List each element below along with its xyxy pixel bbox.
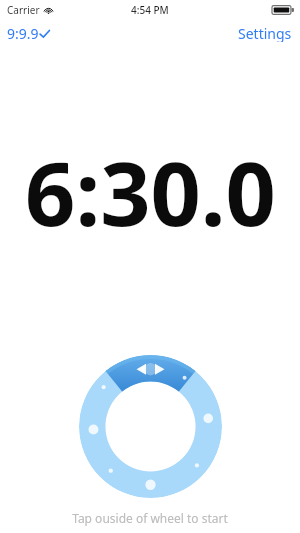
staticText: 9:9.9 — [7, 24, 39, 42]
staticText: 4:54 PM — [131, 3, 169, 17]
button[interactable]: Time adjustment wheel — [79, 355, 222, 498]
button[interactable]: Settings — [230, 20, 300, 46]
staticText: Settings — [238, 24, 292, 42]
staticText: Carrier — [7, 3, 40, 17]
staticText: Tap ouside of wheel to start — [72, 510, 228, 526]
button[interactable]: 9:9.9 — [0, 20, 58, 46]
staticText: 6:30.0 — [25, 132, 276, 252]
